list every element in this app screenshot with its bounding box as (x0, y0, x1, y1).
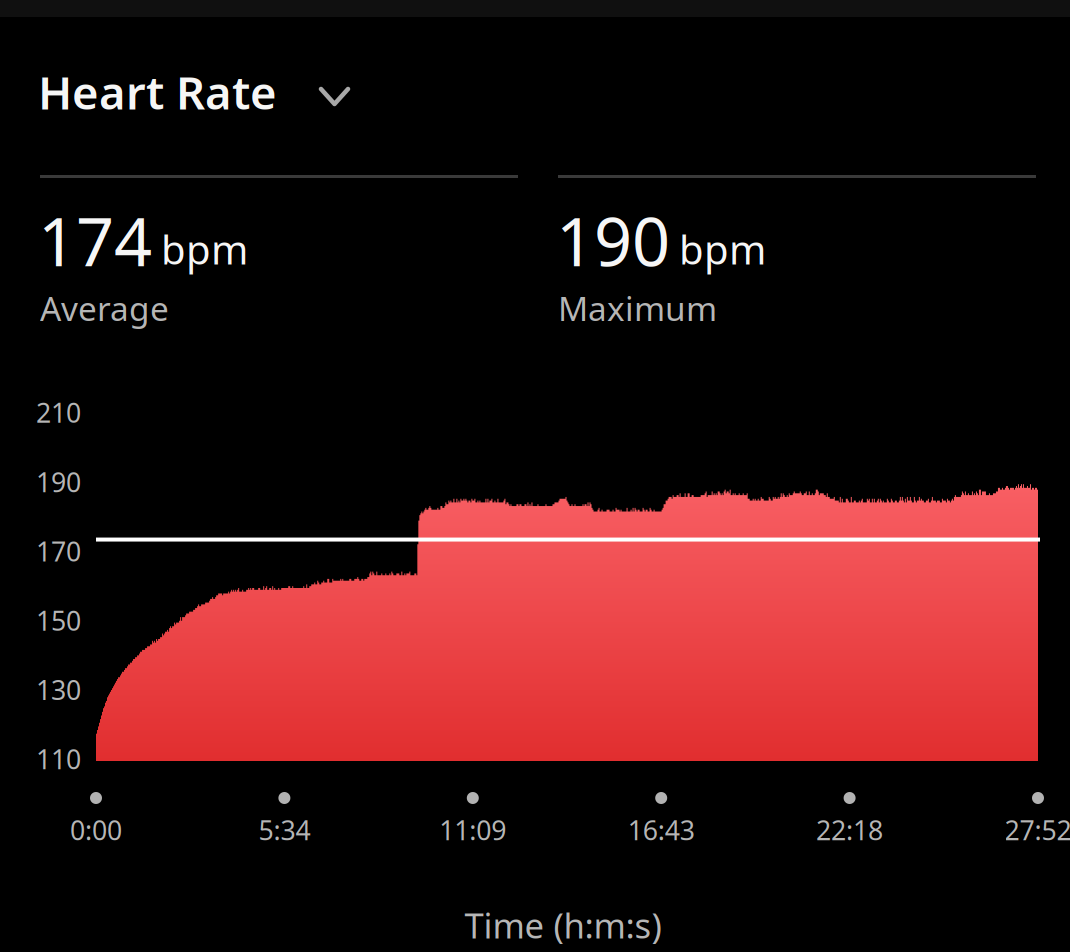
staticText: 190 (36, 464, 81, 499)
staticText: bpm (679, 222, 766, 275)
staticText: bpm (161, 222, 248, 275)
staticText: 16:43 (628, 812, 695, 848)
staticText: 27:52 (1004, 812, 1070, 848)
staticText: Average (40, 286, 169, 330)
staticText: 5:34 (258, 812, 310, 848)
staticText: Time (h:m:s) (464, 902, 661, 948)
staticText: 0:00 (70, 812, 122, 848)
staticText: 110 (36, 741, 81, 777)
staticText: Heart Rate (38, 62, 277, 122)
staticText: 170 (36, 533, 81, 569)
staticText: 130 (36, 672, 81, 707)
staticText: Maximum (558, 286, 717, 330)
staticText: 22:18 (816, 812, 883, 848)
staticText: 210 (36, 395, 81, 430)
button[interactable]: Heart Rate (38, 61, 458, 123)
staticText: 11:09 (439, 812, 506, 848)
staticText: 174 (38, 196, 152, 284)
staticText: 190 (556, 196, 670, 284)
staticText: 150 (36, 603, 81, 638)
